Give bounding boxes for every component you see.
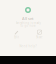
staticText: Edit: [14, 35, 19, 39]
button[interactable]: Share: [33, 30, 45, 38]
staticText: Share: [36, 35, 43, 39]
staticText: Need help?: [19, 44, 36, 48]
staticText: to go now: [20, 24, 35, 27]
button[interactable]: Edit: [10, 30, 22, 38]
staticText: All set: [22, 16, 34, 21]
staticText: Everything is ready: [15, 21, 40, 25]
